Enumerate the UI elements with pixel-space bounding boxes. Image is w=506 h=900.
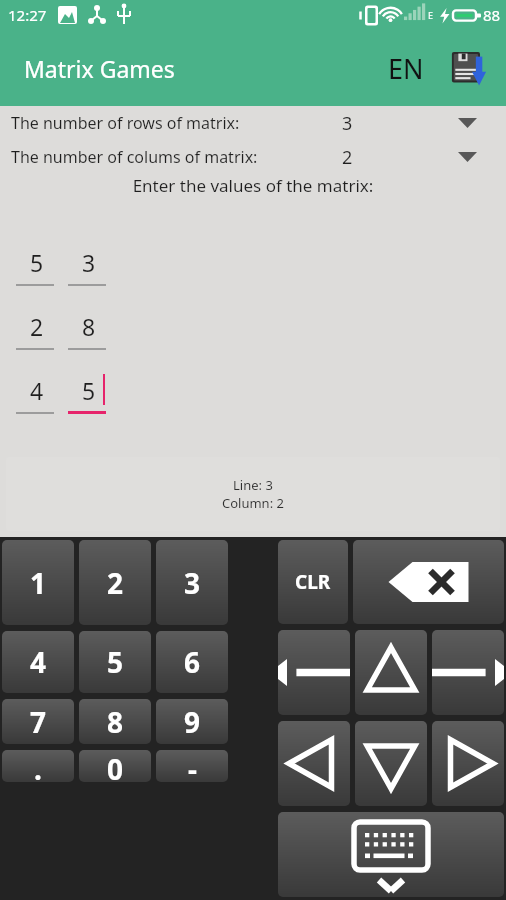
button[interactable]: . bbox=[2, 750, 74, 782]
staticText: 9 bbox=[184, 703, 201, 741]
staticText: EN bbox=[388, 50, 424, 87]
button[interactable]: 9 bbox=[156, 699, 228, 744]
button[interactable]: Previous cell bbox=[278, 721, 350, 806]
button[interactable]: CLR bbox=[278, 540, 348, 624]
staticText: . bbox=[34, 750, 42, 782]
button[interactable]: The number of colums of matrix: bbox=[0, 140, 506, 174]
button[interactable]: 0 bbox=[79, 750, 151, 782]
staticText: 2 bbox=[30, 311, 44, 342]
button[interactable]: Move down bbox=[355, 721, 427, 806]
button[interactable]: 3 bbox=[68, 243, 110, 293]
button[interactable]: Hide keyboard bbox=[278, 812, 504, 897]
button[interactable]: Move up bbox=[355, 630, 427, 715]
staticText: 4 bbox=[30, 643, 47, 681]
button[interactable]: 8 bbox=[68, 307, 110, 357]
staticText: 88 bbox=[483, 5, 501, 25]
button[interactable]: 4 bbox=[2, 631, 74, 693]
button[interactable]: EN bbox=[382, 46, 430, 91]
staticText: 6 bbox=[184, 643, 201, 681]
staticText: 0 bbox=[107, 750, 124, 782]
button[interactable]: 2 bbox=[16, 307, 58, 357]
staticText: - bbox=[188, 750, 197, 782]
staticText: 5 bbox=[82, 375, 96, 406]
button[interactable]: Backspace bbox=[353, 540, 504, 624]
staticText: 2 bbox=[342, 145, 353, 170]
button[interactable]: The number of rows of matrix: bbox=[0, 106, 506, 140]
button[interactable]: - bbox=[156, 750, 228, 782]
staticText: 7 bbox=[30, 703, 47, 741]
button[interactable]: 5 bbox=[16, 243, 58, 293]
button[interactable]: Save bbox=[446, 45, 492, 91]
staticText: CLR bbox=[295, 569, 331, 595]
staticText: 3 bbox=[184, 564, 201, 602]
staticText: Matrix Games bbox=[24, 53, 175, 84]
button[interactable]: 6 bbox=[156, 631, 228, 693]
staticText: Line: 3 bbox=[233, 476, 273, 494]
staticText: 5 bbox=[107, 643, 124, 681]
button[interactable]: 5 bbox=[79, 631, 151, 693]
button[interactable]: Move left bbox=[278, 630, 350, 715]
staticText: 3 bbox=[342, 111, 353, 136]
staticText: 2 bbox=[107, 564, 124, 602]
button[interactable]: 5 bbox=[68, 371, 110, 421]
staticText: Column: 2 bbox=[222, 494, 284, 512]
button[interactable]: 4 bbox=[16, 371, 58, 421]
staticText: 3 bbox=[82, 247, 96, 278]
staticText: 4 bbox=[30, 375, 44, 406]
button[interactable]: Next cell bbox=[432, 721, 504, 806]
staticText: 1 bbox=[30, 564, 47, 602]
staticText: 12:27 bbox=[8, 5, 47, 25]
staticText: 5 bbox=[30, 247, 44, 278]
button[interactable]: 8 bbox=[79, 699, 151, 744]
staticText: Enter the values of the matrix: bbox=[0, 174, 506, 197]
button[interactable]: Line: 3 bbox=[6, 457, 500, 531]
button[interactable]: 7 bbox=[2, 699, 74, 744]
staticText: The number of colums of matrix: bbox=[11, 146, 258, 168]
staticText: 8 bbox=[107, 703, 124, 741]
button[interactable]: Move right bbox=[432, 630, 504, 715]
staticText: The number of rows of matrix: bbox=[11, 112, 240, 134]
button[interactable]: 2 bbox=[79, 540, 151, 625]
staticText: E bbox=[428, 9, 434, 21]
button[interactable]: 3 bbox=[156, 540, 228, 625]
button[interactable]: 1 bbox=[2, 540, 74, 625]
staticText: 8 bbox=[82, 311, 96, 342]
